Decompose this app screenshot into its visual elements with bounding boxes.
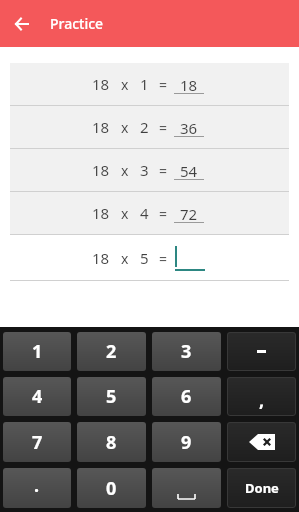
staticText: 5 [106, 384, 117, 409]
staticText: x [121, 75, 129, 94]
button[interactable]: 7 [3, 422, 71, 462]
staticText: x [121, 204, 129, 223]
staticText: = [159, 161, 168, 180]
button[interactable]: 4 [3, 377, 71, 416]
staticText: 18 [92, 248, 110, 268]
staticText: Done [245, 479, 279, 497]
button[interactable]: 3 [152, 332, 221, 371]
staticText: 3 [140, 160, 149, 180]
staticText: 2 [106, 339, 117, 364]
staticText: = [159, 204, 168, 223]
staticText: 18 [92, 160, 110, 180]
button[interactable] [227, 332, 296, 371]
staticText: x [121, 161, 129, 180]
button[interactable]: Done [227, 468, 296, 508]
staticText: 8 [106, 430, 117, 455]
button[interactable]: 5 [77, 377, 146, 416]
staticText: 36 [180, 118, 198, 137]
staticText: 4 [32, 384, 43, 409]
button[interactable] [227, 422, 296, 462]
staticText: . [34, 473, 40, 498]
staticText: = [159, 75, 168, 94]
staticText: Practice [50, 14, 104, 33]
staticText: 2 [140, 117, 149, 137]
button[interactable]: 1 [3, 332, 71, 371]
button[interactable]: 8 [77, 422, 146, 462]
staticText: 18 [92, 74, 110, 94]
staticText: 9 [181, 430, 192, 455]
staticText: 72 [180, 204, 198, 223]
staticText: = [159, 249, 168, 268]
button[interactable]: 0 [77, 468, 146, 508]
button[interactable]: , [227, 377, 296, 416]
staticText: 18 [92, 203, 110, 223]
button[interactable]: 6 [152, 377, 221, 416]
button[interactable]: Practice [0, 0, 299, 47]
staticText: 54 [180, 161, 198, 180]
staticText: 6 [181, 384, 192, 409]
staticText: 3 [181, 339, 192, 364]
staticText: 4 [140, 203, 149, 223]
staticText: 18 [92, 117, 110, 137]
button[interactable] [152, 468, 221, 508]
staticText: , [259, 388, 265, 413]
staticText: 1 [140, 74, 149, 94]
staticText: x [121, 118, 129, 137]
staticText: x [121, 249, 129, 268]
button[interactable]: 9 [152, 422, 221, 462]
staticText: 5 [140, 248, 149, 268]
button[interactable]: . [3, 468, 71, 508]
staticText: = [159, 118, 168, 137]
button[interactable]: 2 [77, 332, 146, 371]
staticText: 1 [32, 339, 43, 364]
staticText: 7 [32, 430, 43, 455]
staticText: 18 [180, 75, 198, 94]
staticText: 0 [106, 476, 117, 501]
